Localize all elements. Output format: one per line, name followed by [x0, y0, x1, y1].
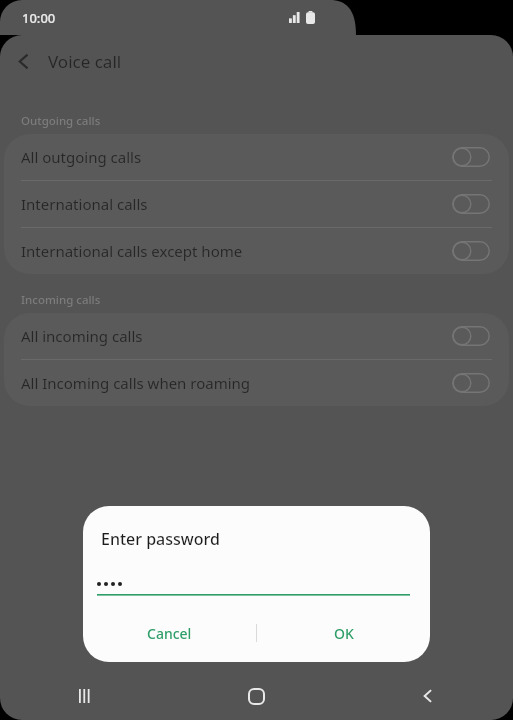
staticText: International calls: [21, 194, 148, 214]
staticText: Outgoing calls: [21, 113, 101, 129]
staticText: Voice call: [48, 50, 122, 73]
button[interactable]: Home: [171, 672, 342, 720]
staticText: All incoming calls: [21, 326, 143, 346]
staticText: International calls except home: [21, 241, 243, 261]
staticText: Incoming calls: [21, 292, 101, 308]
button[interactable]: Back: [342, 672, 513, 720]
button[interactable]: Recent apps: [0, 672, 171, 720]
button[interactable]: OK: [257, 612, 430, 654]
button[interactable]: Back: [0, 37, 48, 85]
staticText: 10:00: [22, 9, 56, 27]
button[interactable]: International calls: [4, 181, 509, 227]
staticText: Enter password: [101, 528, 220, 550]
button[interactable]: Cancel: [83, 612, 256, 654]
staticText: Cancel: [147, 624, 192, 643]
button[interactable]: International calls except home: [4, 228, 509, 274]
staticText: All Incoming calls when roaming: [21, 373, 251, 393]
button[interactable]: All incoming calls: [4, 313, 509, 359]
staticText: OK: [334, 624, 354, 643]
button[interactable]: All outgoing calls: [4, 134, 509, 180]
staticText: All outgoing calls: [21, 147, 142, 167]
button[interactable]: Password field: [97, 572, 410, 596]
button[interactable]: All Incoming calls when roaming: [4, 360, 509, 406]
